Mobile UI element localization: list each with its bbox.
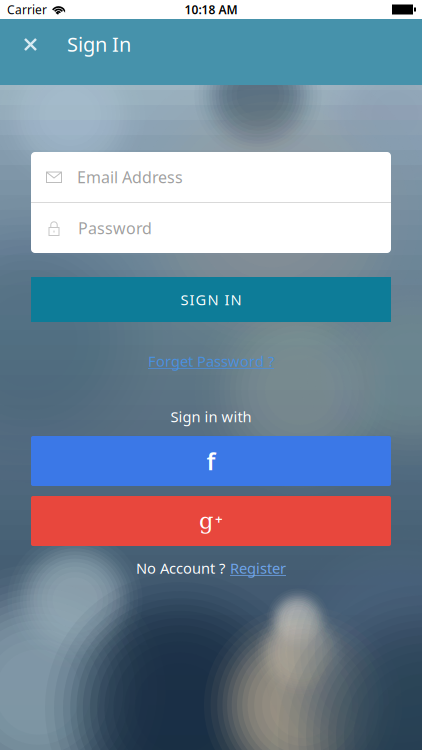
button[interactable]: Sign in with Facebook [31,436,391,486]
staticText: No Account ? [136,558,225,578]
staticText: Carrier [7,1,47,17]
staticText: Sign In [67,31,131,57]
staticText: S I G N I N [180,290,241,309]
staticText: Register [230,558,286,578]
button[interactable]: Password [31,203,391,253]
staticText: f [206,445,215,477]
staticText: 10:18 AM [184,1,237,17]
staticText: + [215,510,223,527]
staticText: Forget Password ? [148,351,274,371]
staticText: Email Address [77,166,183,188]
staticText: Password [78,217,152,239]
staticText: Sign in with [170,407,251,426]
button[interactable]: Close [8,19,52,69]
button[interactable]: S I G N I N [31,277,391,322]
button[interactable]: Register [230,558,286,578]
button[interactable]: Forget Password ? [148,351,274,371]
staticText: g [199,508,214,534]
button[interactable]: Email Address [31,152,391,202]
button[interactable]: Sign in with Google [31,496,391,546]
